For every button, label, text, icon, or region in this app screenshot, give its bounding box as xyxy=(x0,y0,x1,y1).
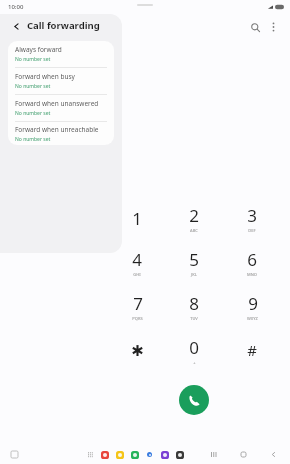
button[interactable]: Home xyxy=(236,447,250,461)
staticText: ✱ xyxy=(131,342,144,359)
button[interactable]: Browser xyxy=(159,449,170,460)
staticText: No number set xyxy=(15,110,51,117)
staticText: 7 xyxy=(133,292,143,315)
staticText: Forward when unanswered xyxy=(15,99,99,108)
staticText: 10:00 xyxy=(8,3,24,11)
button[interactable]: Internet xyxy=(144,449,155,460)
staticText: 9 xyxy=(248,292,258,315)
button[interactable]: 4 xyxy=(111,242,163,282)
button[interactable]: Back xyxy=(9,19,23,33)
staticText: 4 xyxy=(132,248,142,271)
staticText: Forward when unreachable xyxy=(15,125,99,134)
staticText: PQRS xyxy=(132,316,143,321)
button[interactable]: Forward when busy xyxy=(8,68,114,94)
staticText: 8 xyxy=(189,292,199,315)
button[interactable]: Phone xyxy=(129,449,140,460)
button[interactable]: Camera xyxy=(174,449,185,460)
staticText: Always forward xyxy=(15,45,62,54)
button[interactable]: 8 xyxy=(168,286,220,326)
button[interactable]: 2 xyxy=(168,198,220,238)
button[interactable]: Call xyxy=(179,385,209,415)
staticText: 1 xyxy=(132,207,142,230)
button[interactable]: 6 xyxy=(226,242,278,282)
staticText: TUV xyxy=(190,316,198,321)
button[interactable]: Back xyxy=(266,447,280,461)
button[interactable]: 0 xyxy=(168,330,220,370)
staticText: 2 xyxy=(189,204,199,227)
button[interactable]: Screenshot xyxy=(8,448,20,460)
staticText: ABC xyxy=(190,228,198,233)
staticText: JKL xyxy=(191,272,197,277)
button[interactable]: 3 xyxy=(226,198,278,238)
button[interactable]: More options xyxy=(264,18,282,36)
staticText: No number set xyxy=(15,136,51,143)
staticText: Call forwarding xyxy=(27,19,100,32)
staticText: + xyxy=(193,360,196,365)
button[interactable]: # xyxy=(226,330,278,370)
button[interactable]: Forward when unanswered xyxy=(8,95,114,121)
button[interactable]: Apps xyxy=(86,450,95,459)
staticText: # xyxy=(247,340,257,360)
staticText: 5 xyxy=(189,248,199,271)
staticText: Forward when busy xyxy=(15,72,75,81)
button[interactable]: Recents xyxy=(206,447,220,461)
staticText: 3 xyxy=(247,204,257,227)
button[interactable]: Gallery xyxy=(99,449,110,460)
button[interactable]: Notes xyxy=(114,449,125,460)
staticText: No number set xyxy=(15,56,51,63)
staticText: MNO xyxy=(247,272,257,277)
button[interactable]: ✱ xyxy=(111,330,163,370)
staticText: 6 xyxy=(247,248,257,271)
staticText: 0 xyxy=(189,336,199,359)
button[interactable]: 7 xyxy=(111,286,163,326)
staticText: No number set xyxy=(15,83,51,90)
staticText: DEF xyxy=(248,228,256,233)
button[interactable]: Search xyxy=(246,18,264,36)
button[interactable]: 1 xyxy=(111,198,163,238)
button[interactable]: Always forward xyxy=(8,41,114,67)
staticText: WXYZ xyxy=(247,316,258,321)
button[interactable]: Forward when unreachable xyxy=(8,122,114,145)
staticText: GHI xyxy=(133,272,141,277)
button[interactable]: 9 xyxy=(226,286,278,326)
button[interactable]: 5 xyxy=(168,242,220,282)
